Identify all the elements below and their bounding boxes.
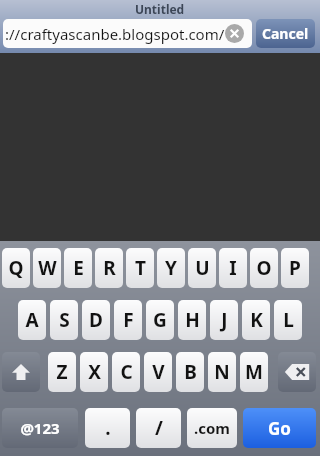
- button[interactable]: L: [274, 300, 302, 340]
- button[interactable]: J: [210, 300, 238, 340]
- staticText: V: [152, 359, 165, 385]
- staticText: Untitled: [135, 1, 185, 17]
- button[interactable]: W: [33, 248, 61, 288]
- button[interactable]: H: [178, 300, 206, 340]
- button[interactable]: V: [144, 352, 172, 392]
- staticText: Y: [165, 255, 177, 281]
- button[interactable]: A: [18, 300, 46, 340]
- button[interactable]: O: [250, 248, 278, 288]
- button[interactable]: D: [82, 300, 110, 340]
- staticText: .: [105, 415, 111, 441]
- staticText: I: [229, 255, 237, 281]
- staticText: D: [89, 307, 103, 333]
- button[interactable]: I: [219, 248, 247, 288]
- button[interactable]: R: [95, 248, 123, 288]
- button[interactable]: .: [85, 408, 130, 448]
- staticText: ://craftyascanbe.blogspot.com/: [5, 24, 225, 44]
- button[interactable]: Go: [243, 408, 316, 448]
- button[interactable]: U: [188, 248, 216, 288]
- button[interactable]: Y: [157, 248, 185, 288]
- button[interactable]: Backspace: [278, 352, 316, 392]
- staticText: /: [155, 415, 163, 441]
- button[interactable]: N: [208, 352, 236, 392]
- staticText: B: [184, 359, 197, 385]
- button[interactable]: Cancel: [256, 19, 315, 48]
- button[interactable]: E: [64, 248, 92, 288]
- button[interactable]: Clear text: [225, 24, 244, 43]
- staticText: Cancel: [262, 24, 309, 43]
- staticText: M: [245, 359, 263, 385]
- staticText: H: [185, 307, 200, 333]
- staticText: A: [25, 307, 39, 333]
- staticText: S: [59, 307, 70, 333]
- staticText: F: [123, 307, 134, 333]
- staticText: R: [103, 255, 116, 281]
- staticText: W: [38, 255, 57, 281]
- staticText: L: [283, 307, 294, 333]
- button[interactable]: K: [242, 300, 270, 340]
- button[interactable]: T: [126, 248, 154, 288]
- staticText: G: [153, 307, 167, 333]
- button[interactable]: /: [136, 408, 181, 448]
- staticText: E: [73, 255, 84, 281]
- button[interactable]: Z: [48, 352, 76, 392]
- staticText: K: [250, 307, 263, 333]
- staticText: N: [214, 359, 230, 385]
- button[interactable]: M: [240, 352, 268, 392]
- staticText: X: [88, 359, 101, 385]
- button[interactable]: P: [281, 248, 309, 288]
- staticText: Go: [268, 417, 291, 440]
- staticText: T: [135, 255, 146, 281]
- staticText: J: [221, 307, 228, 333]
- staticText: C: [120, 359, 133, 385]
- button[interactable]: B: [176, 352, 204, 392]
- button[interactable]: F: [114, 300, 142, 340]
- button[interactable]: G: [146, 300, 174, 340]
- staticText: U: [195, 255, 210, 281]
- staticText: .com: [194, 418, 230, 438]
- staticText: P: [289, 255, 301, 281]
- button[interactable]: ://craftyascanbe.blogspot.com/: [3, 19, 252, 48]
- staticText: Z: [56, 359, 68, 385]
- button[interactable]: S: [50, 300, 78, 340]
- staticText: Q: [8, 255, 24, 281]
- button[interactable]: C: [112, 352, 140, 392]
- button[interactable]: Q: [2, 248, 30, 288]
- button[interactable]: @123: [2, 408, 78, 448]
- staticText: O: [256, 255, 272, 281]
- staticText: @123: [20, 418, 60, 438]
- button[interactable]: .com: [187, 408, 237, 448]
- button[interactable]: X: [80, 352, 108, 392]
- button[interactable]: Shift: [2, 352, 40, 392]
